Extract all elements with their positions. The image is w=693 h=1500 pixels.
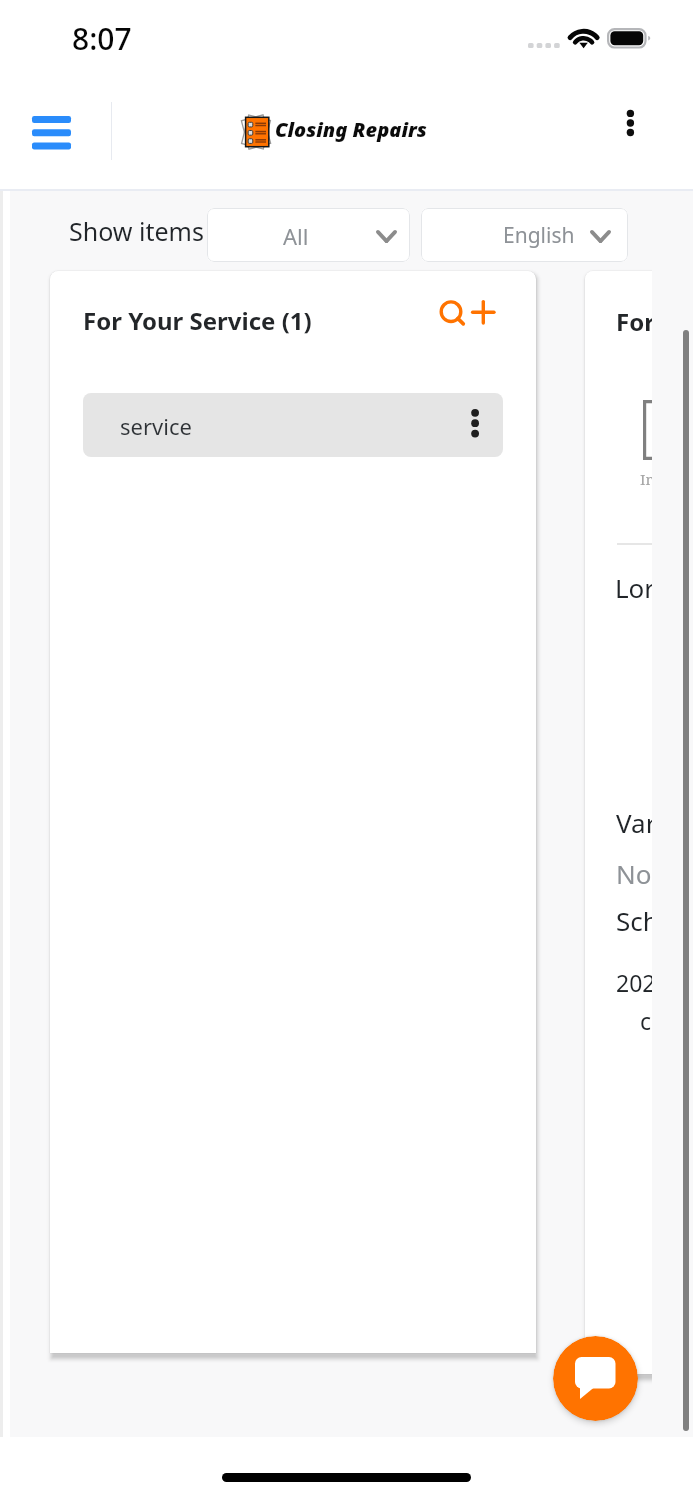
button[interactable]: Add item	[461, 290, 505, 334]
staticText: Show items	[69, 214, 204, 248]
staticText: Image	[640, 469, 685, 489]
button[interactable]: English	[421, 208, 628, 262]
staticText: For Your Property	[616, 305, 693, 338]
staticText: 2024	[616, 967, 669, 998]
staticText: Various	[616, 805, 693, 840]
staticText: Closing Repairs	[275, 116, 427, 143]
button[interactable]: Open chat	[553, 1336, 638, 1421]
staticText: ch	[640, 1005, 666, 1036]
staticText: None	[616, 856, 683, 891]
button[interactable]: service	[83, 393, 503, 457]
staticText: For Your Service (1)	[83, 304, 312, 337]
button[interactable]: More options	[600, 104, 662, 166]
button[interactable]: All	[207, 208, 410, 262]
staticText: service	[120, 411, 192, 441]
staticText: Scheduled	[616, 903, 693, 938]
staticText: 8:07	[72, 18, 132, 59]
staticText: Lorem	[615, 570, 693, 605]
button[interactable]: Open navigation menu	[18, 98, 86, 166]
staticText: English	[503, 221, 575, 250]
staticText: All	[283, 221, 309, 251]
button[interactable]: Search	[429, 290, 473, 334]
button[interactable]: Item options	[455, 398, 503, 446]
